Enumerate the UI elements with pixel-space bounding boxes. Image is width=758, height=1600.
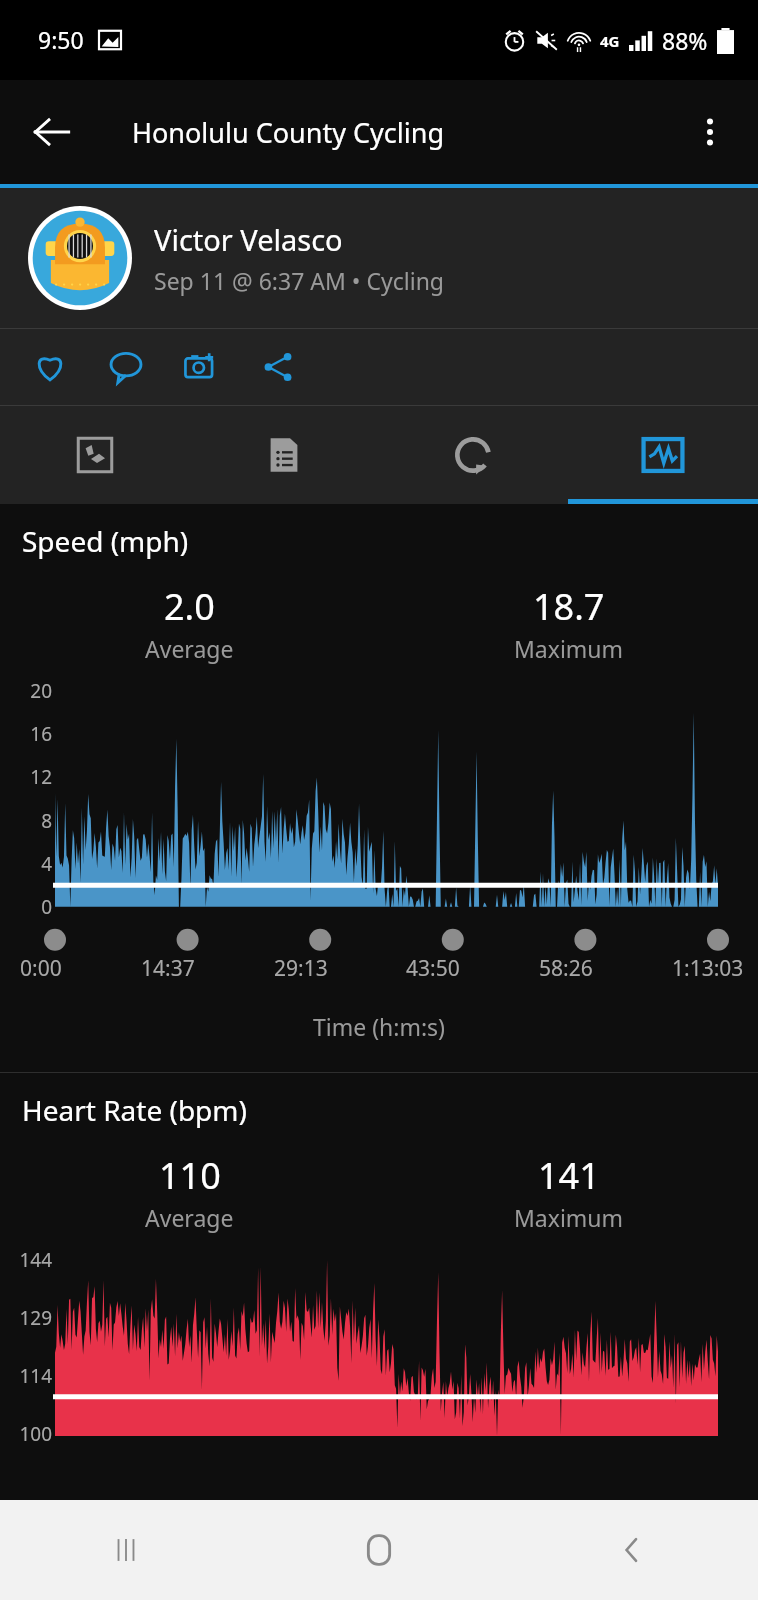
button[interactable]: Back [505, 1500, 758, 1600]
staticText: 18.7 [533, 582, 605, 631]
button[interactable]: Add photo [174, 339, 230, 395]
staticText: 4G [600, 31, 620, 51]
staticText: Heart Rate (bpm) [22, 1091, 247, 1129]
button[interactable]: Comment [98, 339, 154, 395]
staticText: Speed (mph) [22, 522, 189, 560]
staticText: 4 [41, 851, 52, 877]
button[interactable]: Map [0, 406, 189, 504]
button[interactable]: Details [189, 406, 378, 504]
button[interactable]: Recent apps [0, 1500, 252, 1600]
staticText: 110 [159, 1151, 221, 1200]
button[interactable]: Charts [568, 406, 758, 504]
staticText: 58:26 [539, 954, 593, 983]
staticText: Average [145, 633, 234, 664]
staticText: Average [145, 1202, 234, 1233]
staticText: Maximum [514, 633, 624, 664]
button[interactable]: Back [16, 96, 88, 168]
staticText: 141 [538, 1151, 600, 1200]
button[interactable]: Victor Velasco [0, 188, 758, 328]
button[interactable]: Like [22, 339, 78, 395]
staticText: 88% [662, 25, 708, 56]
button[interactable]: Share [250, 339, 306, 395]
staticText: 12 [30, 764, 52, 790]
staticText: 9:50 [38, 24, 84, 55]
staticText: Sep 11 @ 6:37 AM • Cycling [154, 265, 444, 296]
staticText: Time (h:m:s) [0, 1011, 758, 1042]
staticText: 100 [19, 1421, 52, 1447]
button[interactable]: Laps [378, 406, 568, 504]
staticText: 129 [19, 1305, 52, 1331]
button[interactable]: Home [252, 1500, 505, 1600]
staticText: Honolulu County Cycling [132, 114, 445, 151]
staticText: Victor Velasco [154, 220, 343, 259]
staticText: 144 [19, 1247, 52, 1273]
staticText: 14:37 [141, 954, 195, 983]
staticText: Maximum [514, 1202, 624, 1233]
staticText: 43:50 [406, 954, 460, 983]
staticText: 16 [30, 721, 52, 747]
staticText: 2.0 [164, 582, 215, 631]
staticText: 0 [41, 894, 52, 920]
staticText: 8 [41, 808, 52, 834]
staticText: 20 [30, 678, 52, 704]
staticText: 1:13:03 [672, 954, 744, 983]
staticText: 0:00 [20, 954, 62, 983]
button[interactable]: More options [676, 98, 744, 166]
staticText: 29:13 [274, 954, 328, 983]
staticText: 114 [19, 1363, 52, 1389]
